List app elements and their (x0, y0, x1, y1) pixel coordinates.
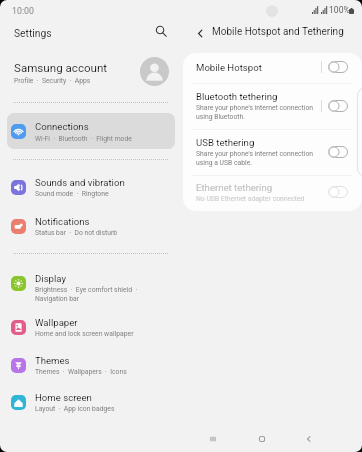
staticText: Sound mode · Ringtone (35, 190, 109, 198)
staticText: using Bluetooth. (196, 113, 246, 121)
staticText: Share your phone's internet connection (196, 104, 314, 112)
staticText: Home and lock screen wallpaper (35, 330, 134, 338)
staticText: Settings (14, 27, 52, 39)
staticText: Wallpaper (35, 317, 78, 328)
button[interactable]: Mobile Hotspot (183, 53, 362, 83)
button[interactable]: Ethernet tethering switch (328, 186, 348, 198)
button[interactable]: Bluetooth tethering switch (328, 100, 348, 112)
staticText: 10:00 (12, 6, 34, 16)
button[interactable]: Home (248, 425, 276, 452)
staticText: Themes (35, 355, 70, 366)
staticText: Home screen (35, 392, 92, 403)
staticText: using a USB cable. (196, 159, 253, 167)
staticText: Wi-Fi · Bluetooth · Flight mode (35, 135, 132, 143)
staticText: Sounds and vibration (35, 177, 125, 188)
staticText: Mobile Hotspot (196, 62, 262, 73)
staticText: Status bar · Do not disturb (35, 229, 118, 237)
staticText: Navigation bar (35, 295, 79, 303)
staticText: Themes · Wallpapers · Icons (35, 368, 127, 376)
button[interactable]: Back (191, 24, 209, 42)
button[interactable]: Samsung account (0, 54, 181, 94)
button[interactable]: Connections (7, 113, 175, 149)
button[interactable]: Display (7, 269, 175, 302)
staticText: Notifications (35, 216, 90, 227)
button[interactable]: Home screen (7, 388, 175, 413)
staticText: Layout · App icon badges (35, 405, 115, 413)
staticText: Share your phone's internet connection (196, 150, 314, 158)
button[interactable]: Search (152, 22, 170, 40)
staticText: Display (35, 273, 66, 284)
staticText: Profile · Security · Apps (14, 77, 91, 85)
button[interactable]: Mobile Hotspot switch (328, 61, 348, 73)
button[interactable]: Sounds and vibration (7, 173, 175, 198)
button[interactable]: Recents (199, 425, 227, 452)
staticText: Ethernet tethering (196, 182, 273, 193)
staticText: 100% (329, 5, 350, 15)
staticText: Brightness · Eye comfort shield · (35, 286, 138, 294)
button[interactable]: USB tethering (183, 129, 362, 176)
button[interactable]: Notifications (7, 212, 175, 237)
button[interactable]: Themes (7, 351, 175, 376)
button[interactable]: Wallpaper (7, 313, 175, 338)
staticText: USB tethering (196, 137, 255, 148)
button[interactable]: Back (295, 425, 323, 452)
staticText: Connections (35, 121, 89, 132)
staticText: Mobile Hotspot and Tethering (212, 26, 344, 38)
staticText: No USB Ethernet adapter connected (196, 195, 305, 203)
button[interactable]: Ethernet tethering (183, 175, 362, 211)
button[interactable]: USB tethering switch (328, 146, 348, 158)
staticText: Samsung account (14, 61, 108, 75)
button[interactable]: Bluetooth tethering (183, 83, 362, 129)
staticText: Bluetooth tethering (196, 91, 278, 102)
